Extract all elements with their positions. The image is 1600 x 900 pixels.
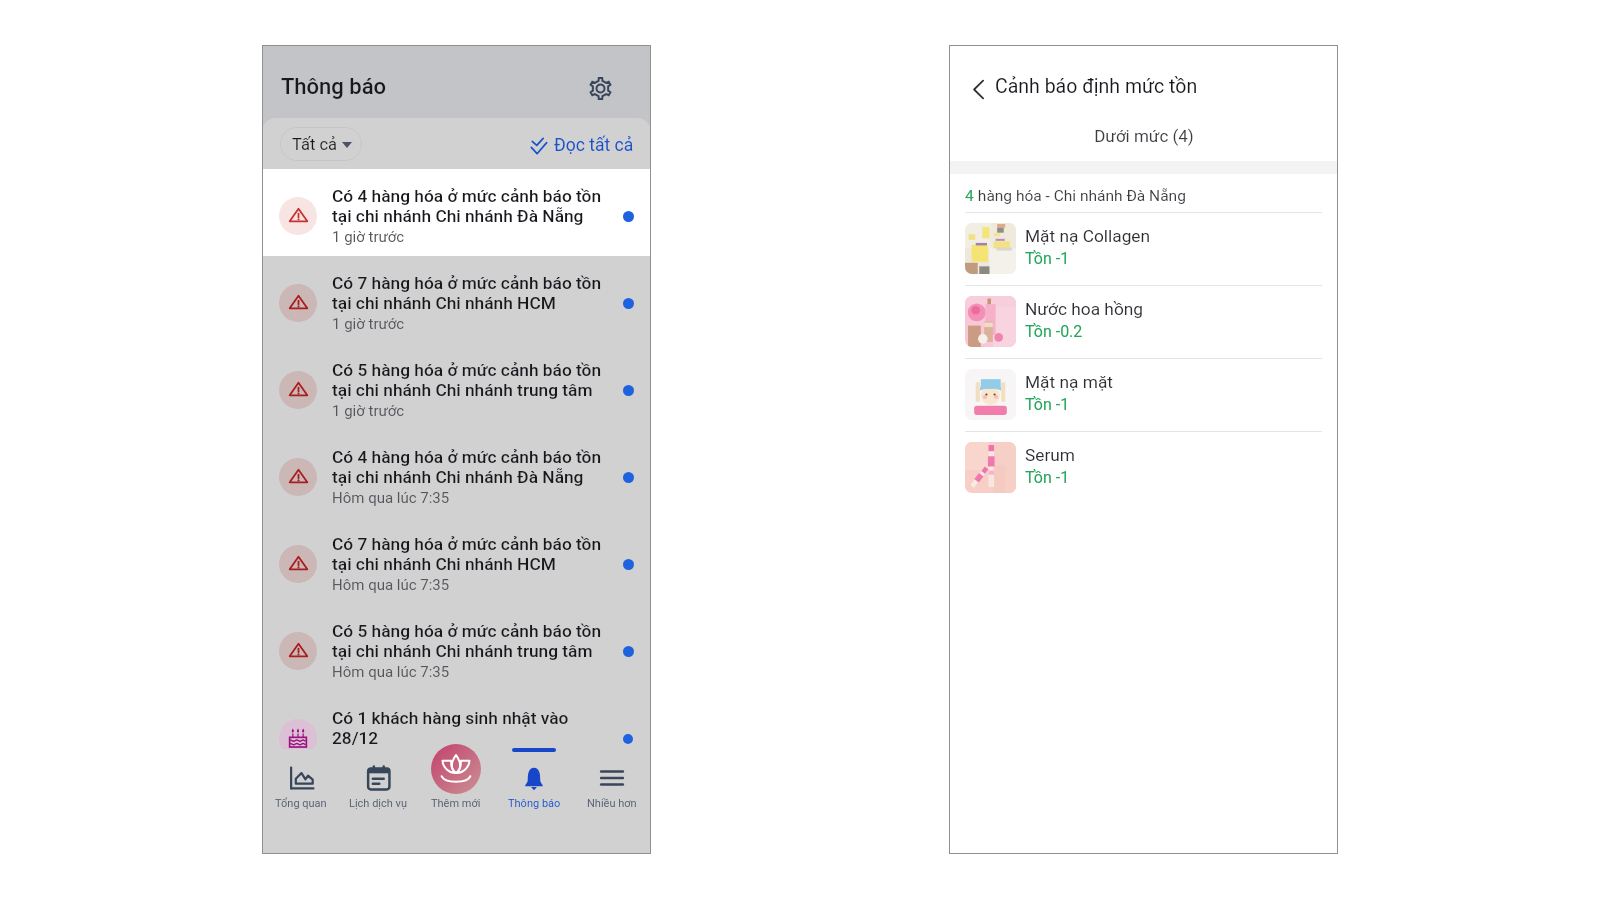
button[interactable]: Back: [964, 75, 992, 103]
staticText: Dưới mức (4): [1094, 126, 1194, 146]
staticText: Có 1 khách hàng sinh nhật vào: [332, 708, 569, 728]
staticText: Tổng quan: [275, 797, 327, 810]
staticText: Thêm mới: [431, 797, 481, 810]
staticText: Lịch dịch vụ: [349, 797, 407, 810]
staticText: 4: [965, 187, 974, 205]
staticText: tại chi nhánh Chi nhánh Đà Nẵng: [332, 206, 584, 226]
staticText: Tồn -1: [1025, 395, 1070, 414]
button[interactable]: Thêm mới: [417, 740, 495, 854]
staticText: Tồn -1: [1025, 468, 1070, 487]
staticText: Có 4 hàng hóa ở mức cảnh báo tồn: [332, 186, 602, 206]
staticText: Hôm qua lúc 7:35: [332, 576, 450, 594]
staticText: Có 5 hàng hóa ở mức cảnh báo tồn: [332, 621, 602, 641]
button[interactable]: Nhiều hơn: [573, 740, 651, 854]
button[interactable]: Có 7 hàng hóa ở mức cảnh báo tồn: [262, 517, 651, 604]
staticText: tại chi nhánh Chi nhánh trung tâm: [332, 380, 593, 400]
button[interactable]: Có 1 khách hàng sinh nhật vào: [262, 691, 651, 778]
button[interactable]: Có 7 hàng hóa ở mức cảnh báo tồn: [262, 256, 651, 343]
button[interactable]: Settings: [586, 74, 614, 102]
staticText: tại chi nhánh Chi nhánh HCM: [332, 554, 556, 574]
button[interactable]: Tổng quan: [262, 740, 339, 854]
staticText: hàng hóa - Chi nhánh Đà Nẵng: [974, 187, 1186, 205]
button[interactable]: Dưới mức (4): [949, 116, 1338, 156]
staticText: Mặt nạ Collagen: [1025, 226, 1151, 246]
staticText: Cảnh báo định mức tồn: [995, 75, 1198, 98]
button[interactable]: Nước hoa hồng: [949, 286, 1338, 358]
staticText: Có 7 hàng hóa ở mức cảnh báo tồn: [332, 534, 602, 554]
button[interactable]: Mặt nạ Collagen: [949, 213, 1338, 285]
button[interactable]: Thông báo: [495, 740, 573, 854]
staticText: Nước hoa hồng: [1025, 299, 1144, 319]
staticText: tại chi nhánh Chi nhánh Đà Nẵng: [332, 467, 584, 487]
staticText: Serum: [1025, 445, 1076, 465]
staticText: 28/12: [332, 728, 379, 748]
staticText: Tồn -1: [1025, 249, 1070, 268]
button[interactable]: Serum: [949, 432, 1338, 504]
staticText: tại chi nhánh Chi nhánh HCM: [332, 293, 556, 313]
button[interactable]: Có 5 hàng hóa ở mức cảnh báo tồn: [262, 343, 651, 430]
staticText: 1 giờ trước: [332, 228, 405, 246]
staticText: 1 giờ trước: [332, 402, 405, 420]
staticText: Có 5 hàng hóa ở mức cảnh báo tồn: [332, 360, 602, 380]
staticText: Thông báo: [281, 74, 387, 100]
button[interactable]: Đọc tất cả: [527, 130, 638, 161]
staticText: Mặt nạ mặt: [1025, 372, 1113, 392]
staticText: Hôm qua lúc 7:35: [332, 663, 450, 681]
button[interactable]: Lịch dịch vụ: [339, 740, 417, 854]
staticText: Thông báo: [508, 797, 561, 810]
button[interactable]: Tất cả: [280, 127, 362, 161]
staticText: Hôm qua lúc 7:35: [332, 489, 450, 507]
staticText: Tồn -0.2: [1025, 322, 1083, 341]
staticText: Có 4 hàng hóa ở mức cảnh báo tồn: [332, 447, 602, 467]
staticText: tại chi nhánh Chi nhánh trung tâm: [332, 641, 593, 661]
staticText: Nhiều hơn: [587, 797, 637, 810]
button[interactable]: Có 5 hàng hóa ở mức cảnh báo tồn: [262, 604, 651, 691]
staticText: Đọc tất cả: [554, 135, 634, 156]
button[interactable]: Có 4 hàng hóa ở mức cảnh báo tồn: [262, 169, 651, 256]
staticText: Tất cả: [292, 135, 338, 154]
staticText: Có 7 hàng hóa ở mức cảnh báo tồn: [332, 273, 602, 293]
staticText: 1 giờ trước: [332, 315, 405, 333]
button[interactable]: Mặt nạ mặt: [949, 359, 1338, 431]
button[interactable]: Có 4 hàng hóa ở mức cảnh báo tồn: [262, 430, 651, 517]
